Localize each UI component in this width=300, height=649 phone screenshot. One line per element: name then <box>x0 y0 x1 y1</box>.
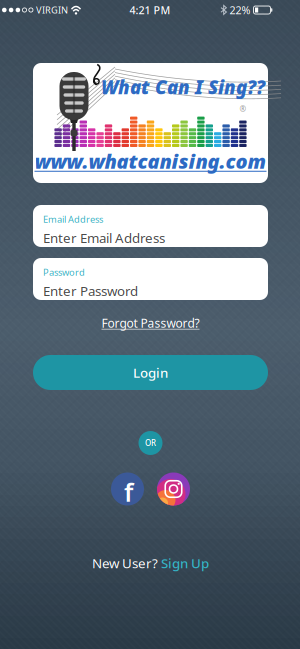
staticText: Password <box>43 266 85 278</box>
button[interactable]: Login with Instagram <box>157 472 190 505</box>
staticText: Enter Password <box>43 282 138 300</box>
staticText: www.whatcanising.com <box>34 148 266 174</box>
staticText: New User? <box>92 554 158 572</box>
staticText: VIRGIN <box>36 4 68 16</box>
staticText: What Can I Sing?? <box>101 75 265 99</box>
button[interactable]: Login with Facebook <box>111 472 144 505</box>
button[interactable]: Login <box>33 355 268 390</box>
staticText: ® <box>239 104 246 114</box>
button[interactable]: Email Address <box>33 205 268 247</box>
staticText: f <box>124 475 133 509</box>
staticText: 22% <box>229 3 250 17</box>
button[interactable]: Sign Up <box>161 554 209 572</box>
button[interactable]: Password <box>33 258 268 300</box>
staticText: 4:21 PM <box>129 3 170 17</box>
staticText: Enter Email Address <box>43 229 165 247</box>
button[interactable]: Forgot Password? <box>101 315 199 331</box>
staticText: Login <box>133 364 168 381</box>
staticText: Forgot Password? <box>101 315 199 331</box>
staticText: Email Address <box>43 213 103 225</box>
staticText: OR <box>145 438 156 448</box>
staticText: Sign Up <box>161 554 209 572</box>
